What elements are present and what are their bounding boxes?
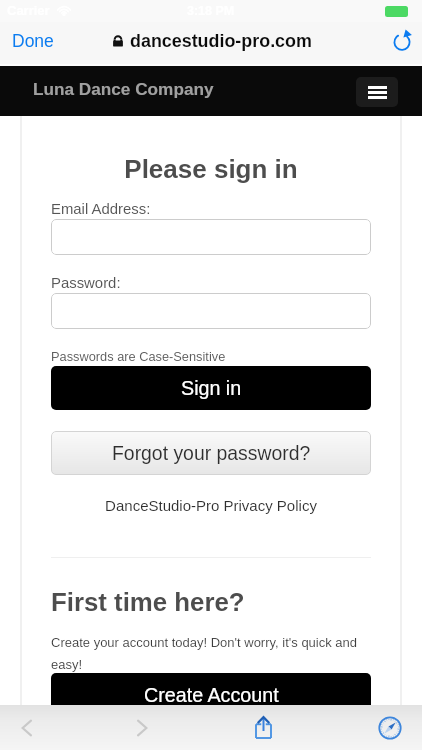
staticText: dancestudio-pro.com — [130, 31, 312, 51]
staticText: Create Account — [144, 684, 279, 706]
button[interactable]: Forgot your password? — [51, 431, 371, 475]
staticText: Please sign in — [51, 154, 371, 183]
button[interactable]: Reload — [385, 24, 419, 58]
button[interactable]: Bookmarks — [362, 705, 418, 750]
button[interactable] — [51, 219, 371, 255]
staticText: Passwords are Case-Sensitive — [51, 349, 226, 363]
button[interactable]: Forward — [114, 705, 170, 750]
button[interactable]: Sign in — [51, 366, 371, 410]
staticText: Forgot your password? — [112, 442, 311, 464]
staticText: Luna Dance Company — [33, 79, 214, 98]
button[interactable]: Menu — [356, 77, 398, 107]
button[interactable] — [51, 293, 371, 329]
staticText: Password: — [51, 275, 121, 292]
button[interactable]: Share — [235, 705, 291, 750]
button[interactable]: Done — [0, 25, 66, 57]
staticText: Sign in — [181, 377, 242, 399]
staticText: Create your account today! Don't worry, … — [51, 635, 371, 672]
button[interactable]: DanceStudio-Pro Privacy Policy — [51, 497, 371, 514]
button[interactable]: Back — [0, 705, 55, 750]
staticText: Email Address: — [51, 201, 151, 218]
staticText: First time here? — [51, 588, 245, 617]
staticText: Done — [12, 31, 54, 51]
button[interactable]: Create Account — [51, 673, 371, 717]
